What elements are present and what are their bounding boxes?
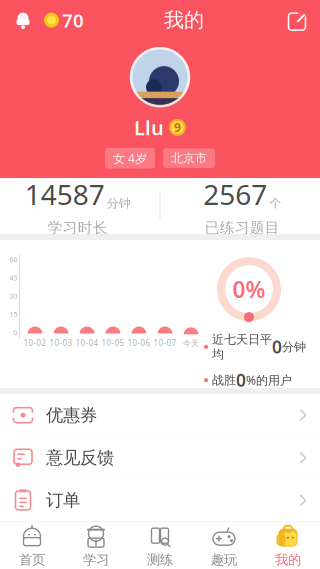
- staticText: 0: [236, 369, 246, 392]
- staticText: 已练习题目: [205, 219, 280, 237]
- staticText: 优惠券: [46, 404, 97, 426]
- staticText: 2567: [203, 176, 267, 213]
- button[interactable]: 首页: [0, 522, 64, 569]
- staticText: 0: [13, 328, 17, 337]
- staticText: 趣玩: [211, 552, 237, 568]
- staticText: 个: [269, 196, 281, 211]
- staticText: 我的: [275, 552, 301, 568]
- staticText: 10-05: [101, 337, 124, 348]
- staticText: 30: [9, 292, 17, 301]
- staticText: 15: [9, 310, 17, 319]
- staticText: 学习时长: [48, 219, 108, 237]
- staticText: Llu: [134, 114, 164, 141]
- staticText: 测练: [147, 552, 173, 568]
- staticText: 女 4岁: [113, 150, 147, 166]
- staticText: 今天: [183, 338, 199, 348]
- staticText: 10-02: [23, 337, 46, 348]
- button[interactable]: Llu: [0, 42, 320, 169]
- button[interactable]: 订单: [0, 479, 320, 521]
- button[interactable]: 金币 70: [40, 3, 88, 37]
- staticText: 0: [272, 335, 282, 358]
- staticText: 意见反馈: [46, 447, 114, 468]
- staticText: 10-07: [153, 337, 176, 348]
- button[interactable]: 通知: [6, 3, 40, 37]
- staticText: 0%: [232, 274, 265, 304]
- button[interactable]: 趣玩: [192, 522, 256, 569]
- staticText: %的用户: [246, 372, 292, 388]
- staticText: 学习: [83, 552, 109, 568]
- staticText: 14587: [25, 176, 105, 213]
- button[interactable]: 我的: [256, 522, 320, 569]
- staticText: 10-03: [49, 337, 72, 348]
- staticText: 60: [9, 255, 17, 264]
- staticText: 9: [174, 119, 181, 135]
- staticText: 首页: [19, 552, 45, 568]
- staticText: 订单: [46, 490, 80, 511]
- staticText: 分钟: [107, 196, 131, 211]
- staticText: 10-06: [127, 337, 150, 348]
- staticText: 我的: [164, 8, 204, 32]
- staticText: 近七天日平均: [212, 332, 272, 362]
- staticText: 分钟: [282, 339, 306, 354]
- staticText: 70: [62, 8, 84, 33]
- staticText: 45: [9, 273, 17, 282]
- staticText: 战胜: [212, 373, 236, 387]
- button[interactable]: 测练: [128, 522, 192, 569]
- button[interactable]: 分享: [280, 3, 314, 37]
- button[interactable]: 意见反馈: [0, 437, 320, 479]
- button[interactable]: 学习: [64, 522, 128, 569]
- button[interactable]: 优惠券: [0, 394, 320, 437]
- staticText: 10-04: [75, 337, 98, 348]
- staticText: 北京市: [171, 151, 207, 165]
